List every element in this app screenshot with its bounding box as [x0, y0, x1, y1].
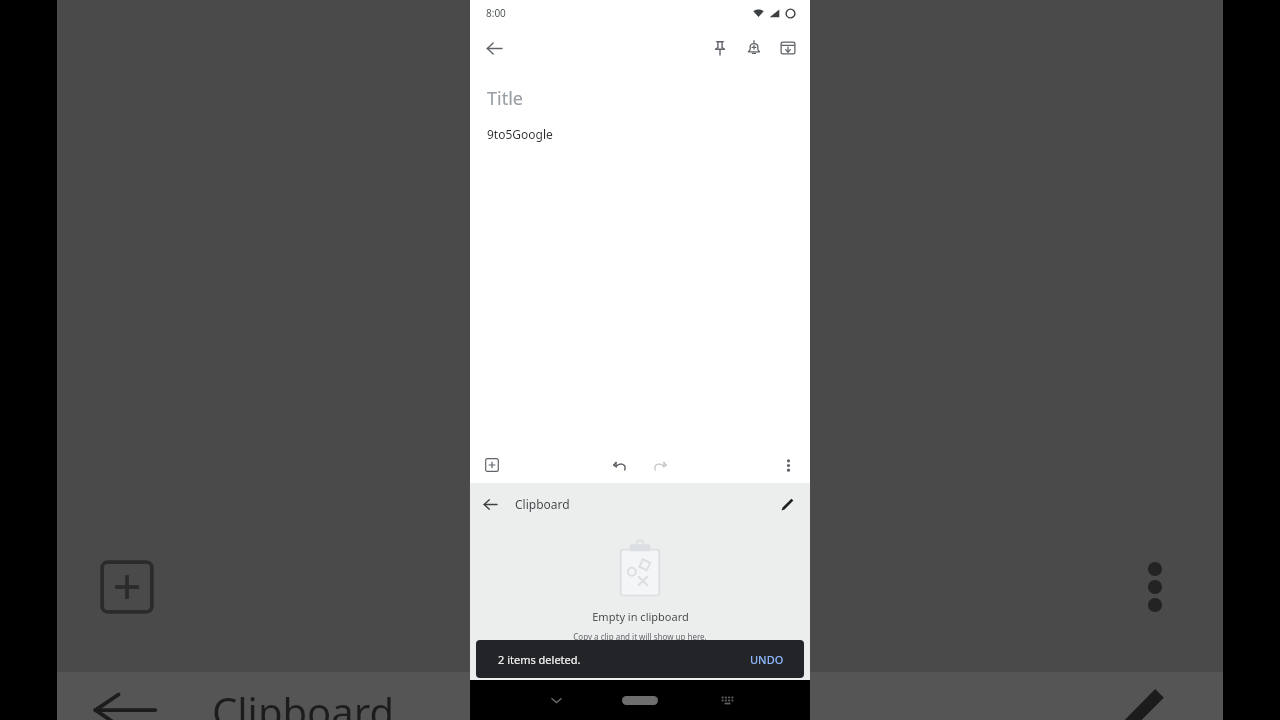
button[interactable]: Back: [475, 489, 505, 519]
staticText: Clipboard: [515, 496, 570, 512]
button[interactable]: Undo: [604, 449, 636, 481]
button[interactable]: Home: [622, 696, 658, 705]
staticText: 8:00: [486, 6, 506, 20]
button[interactable]: Redo: [643, 449, 675, 481]
staticText: Empty in clipboard: [592, 609, 689, 624]
button[interactable]: Add: [476, 449, 508, 481]
button[interactable]: UNDO: [742, 646, 792, 673]
staticText: 9to5Google: [487, 126, 553, 142]
staticText: UNDO: [750, 652, 784, 667]
button[interactable]: Reminder: [737, 31, 771, 65]
staticText: Copy a clip and it will show up here.: [573, 631, 707, 642]
button[interactable]: Switch keyboard: [714, 687, 740, 713]
button[interactable]: Edit: [772, 489, 802, 519]
button[interactable]: Back: [477, 31, 511, 65]
staticText: Clipboard: [212, 684, 395, 720]
button[interactable]: Archive: [771, 31, 805, 65]
staticText: 2 items deleted.: [498, 652, 742, 667]
button[interactable]: More options: [772, 449, 804, 481]
button[interactable]: Hide keyboard: [542, 686, 570, 714]
button[interactable]: Pin: [703, 31, 737, 65]
staticText: Title: [487, 86, 523, 111]
